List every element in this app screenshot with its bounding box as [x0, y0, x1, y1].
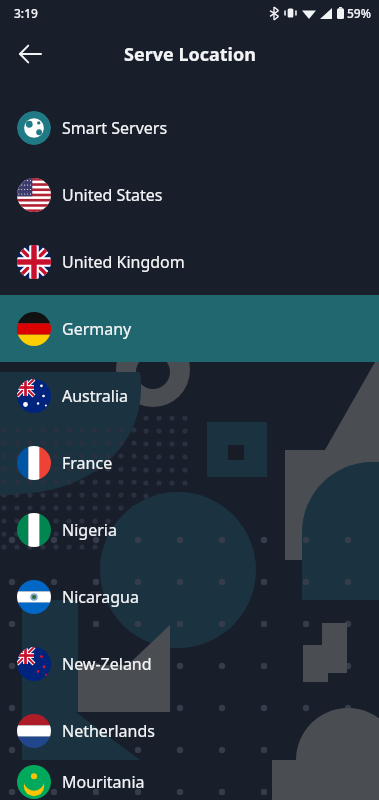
button[interactable]: United Kingdom [0, 228, 379, 295]
staticText: United Kingdom [62, 251, 185, 273]
staticText: Netherlands [62, 720, 155, 742]
staticText: 3:19 [14, 5, 38, 21]
staticText: Australia [62, 385, 129, 407]
staticText: New-Zeland [62, 653, 152, 675]
button[interactable]: New-Zeland [0, 630, 379, 697]
staticText: Serve Location [124, 42, 256, 67]
staticText: Mouritania [62, 771, 145, 793]
button[interactable]: Netherlands [0, 697, 379, 764]
button[interactable]: Back [8, 32, 52, 76]
button[interactable]: United States [0, 161, 379, 228]
staticText: 59% [347, 5, 371, 21]
staticText: Germany [62, 318, 132, 340]
staticText: Nicaragua [62, 586, 139, 608]
button[interactable]: Australia [0, 362, 379, 429]
staticText: Smart Servers [62, 117, 168, 139]
button[interactable]: Nigeria [0, 496, 379, 563]
button[interactable]: Mouritania [0, 764, 379, 800]
staticText: Nigeria [62, 519, 117, 541]
button[interactable]: Nicaragua [0, 563, 379, 630]
button[interactable]: Germany [0, 295, 379, 362]
button[interactable]: France [0, 429, 379, 496]
button[interactable]: Smart Servers [0, 94, 379, 161]
staticText: United States [62, 184, 163, 206]
staticText: France [62, 452, 113, 474]
